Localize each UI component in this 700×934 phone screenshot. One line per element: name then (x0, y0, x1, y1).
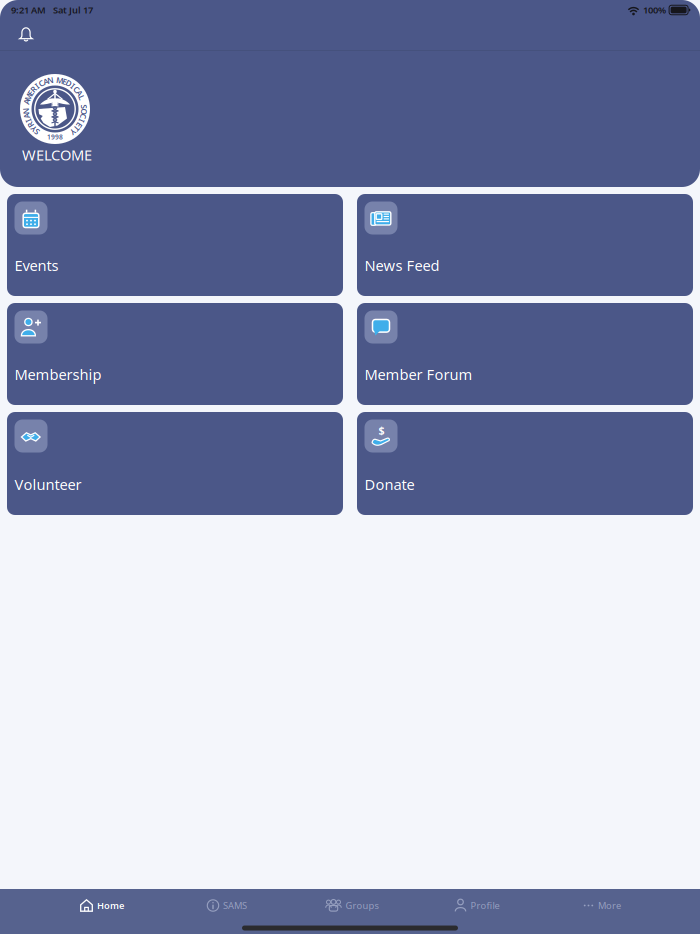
staticText: M (25, 92, 32, 102)
button[interactable]: News Feed (357, 194, 693, 296)
staticText: R (28, 120, 33, 130)
button[interactable]: Home (80, 893, 124, 918)
button[interactable]: More (583, 893, 621, 918)
staticText: A (24, 111, 29, 121)
staticText: Member Forum (364, 364, 472, 384)
staticText: T (74, 123, 79, 134)
staticText: I (71, 81, 74, 91)
button[interactable]: SAMS (207, 893, 247, 918)
staticText: E (77, 120, 81, 130)
staticText: I (36, 81, 39, 91)
staticText: C (74, 84, 79, 94)
staticText: S (82, 101, 86, 112)
staticText: 100% (643, 4, 666, 16)
button[interactable]: Member Forum (357, 303, 693, 405)
staticText: News Feed (364, 255, 439, 275)
staticText: Volunteer (14, 474, 81, 494)
staticText: Membership (14, 364, 101, 384)
staticText: L (80, 92, 84, 102)
button[interactable]: Events (7, 194, 343, 296)
staticText: I (80, 115, 83, 126)
staticText: S (35, 127, 39, 137)
staticText: 1998 (47, 133, 63, 141)
staticText: N (23, 106, 29, 117)
staticText: N (47, 75, 53, 85)
staticText: SAMS (223, 899, 247, 912)
staticText: M (56, 75, 63, 85)
button[interactable]: Volunteer (7, 412, 343, 515)
staticText: I (27, 115, 30, 126)
staticText: D (66, 78, 72, 89)
button[interactable]: Notifications (10, 19, 42, 49)
staticText: A (24, 96, 29, 107)
button[interactable]: Membership (7, 303, 343, 405)
staticText: More (598, 899, 621, 912)
staticText: 9:21 AM (11, 4, 46, 16)
staticText: Events (14, 255, 58, 275)
button[interactable]: Groups (325, 893, 378, 918)
staticText: Sat Jul 17 (53, 4, 93, 16)
staticText: Y (31, 123, 36, 134)
button[interactable]: Profile (454, 893, 499, 918)
staticText: E (62, 76, 66, 87)
staticText: R (31, 84, 36, 94)
staticText: Donate (364, 474, 414, 494)
staticText: A (77, 88, 82, 98)
staticText: O (81, 106, 87, 117)
staticText: A (43, 76, 48, 87)
staticText (82, 96, 84, 107)
staticText: C (39, 78, 44, 89)
staticText: Y (70, 127, 75, 137)
staticText: Profile (470, 899, 499, 912)
staticText: C (81, 111, 86, 121)
staticText: WELCOME (22, 145, 92, 164)
staticText: E (29, 88, 33, 98)
staticText: Home (97, 899, 124, 912)
staticText: Groups (345, 899, 378, 912)
button[interactable]: $ (357, 412, 693, 515)
staticText (25, 101, 27, 112)
staticText: $ (378, 423, 384, 437)
